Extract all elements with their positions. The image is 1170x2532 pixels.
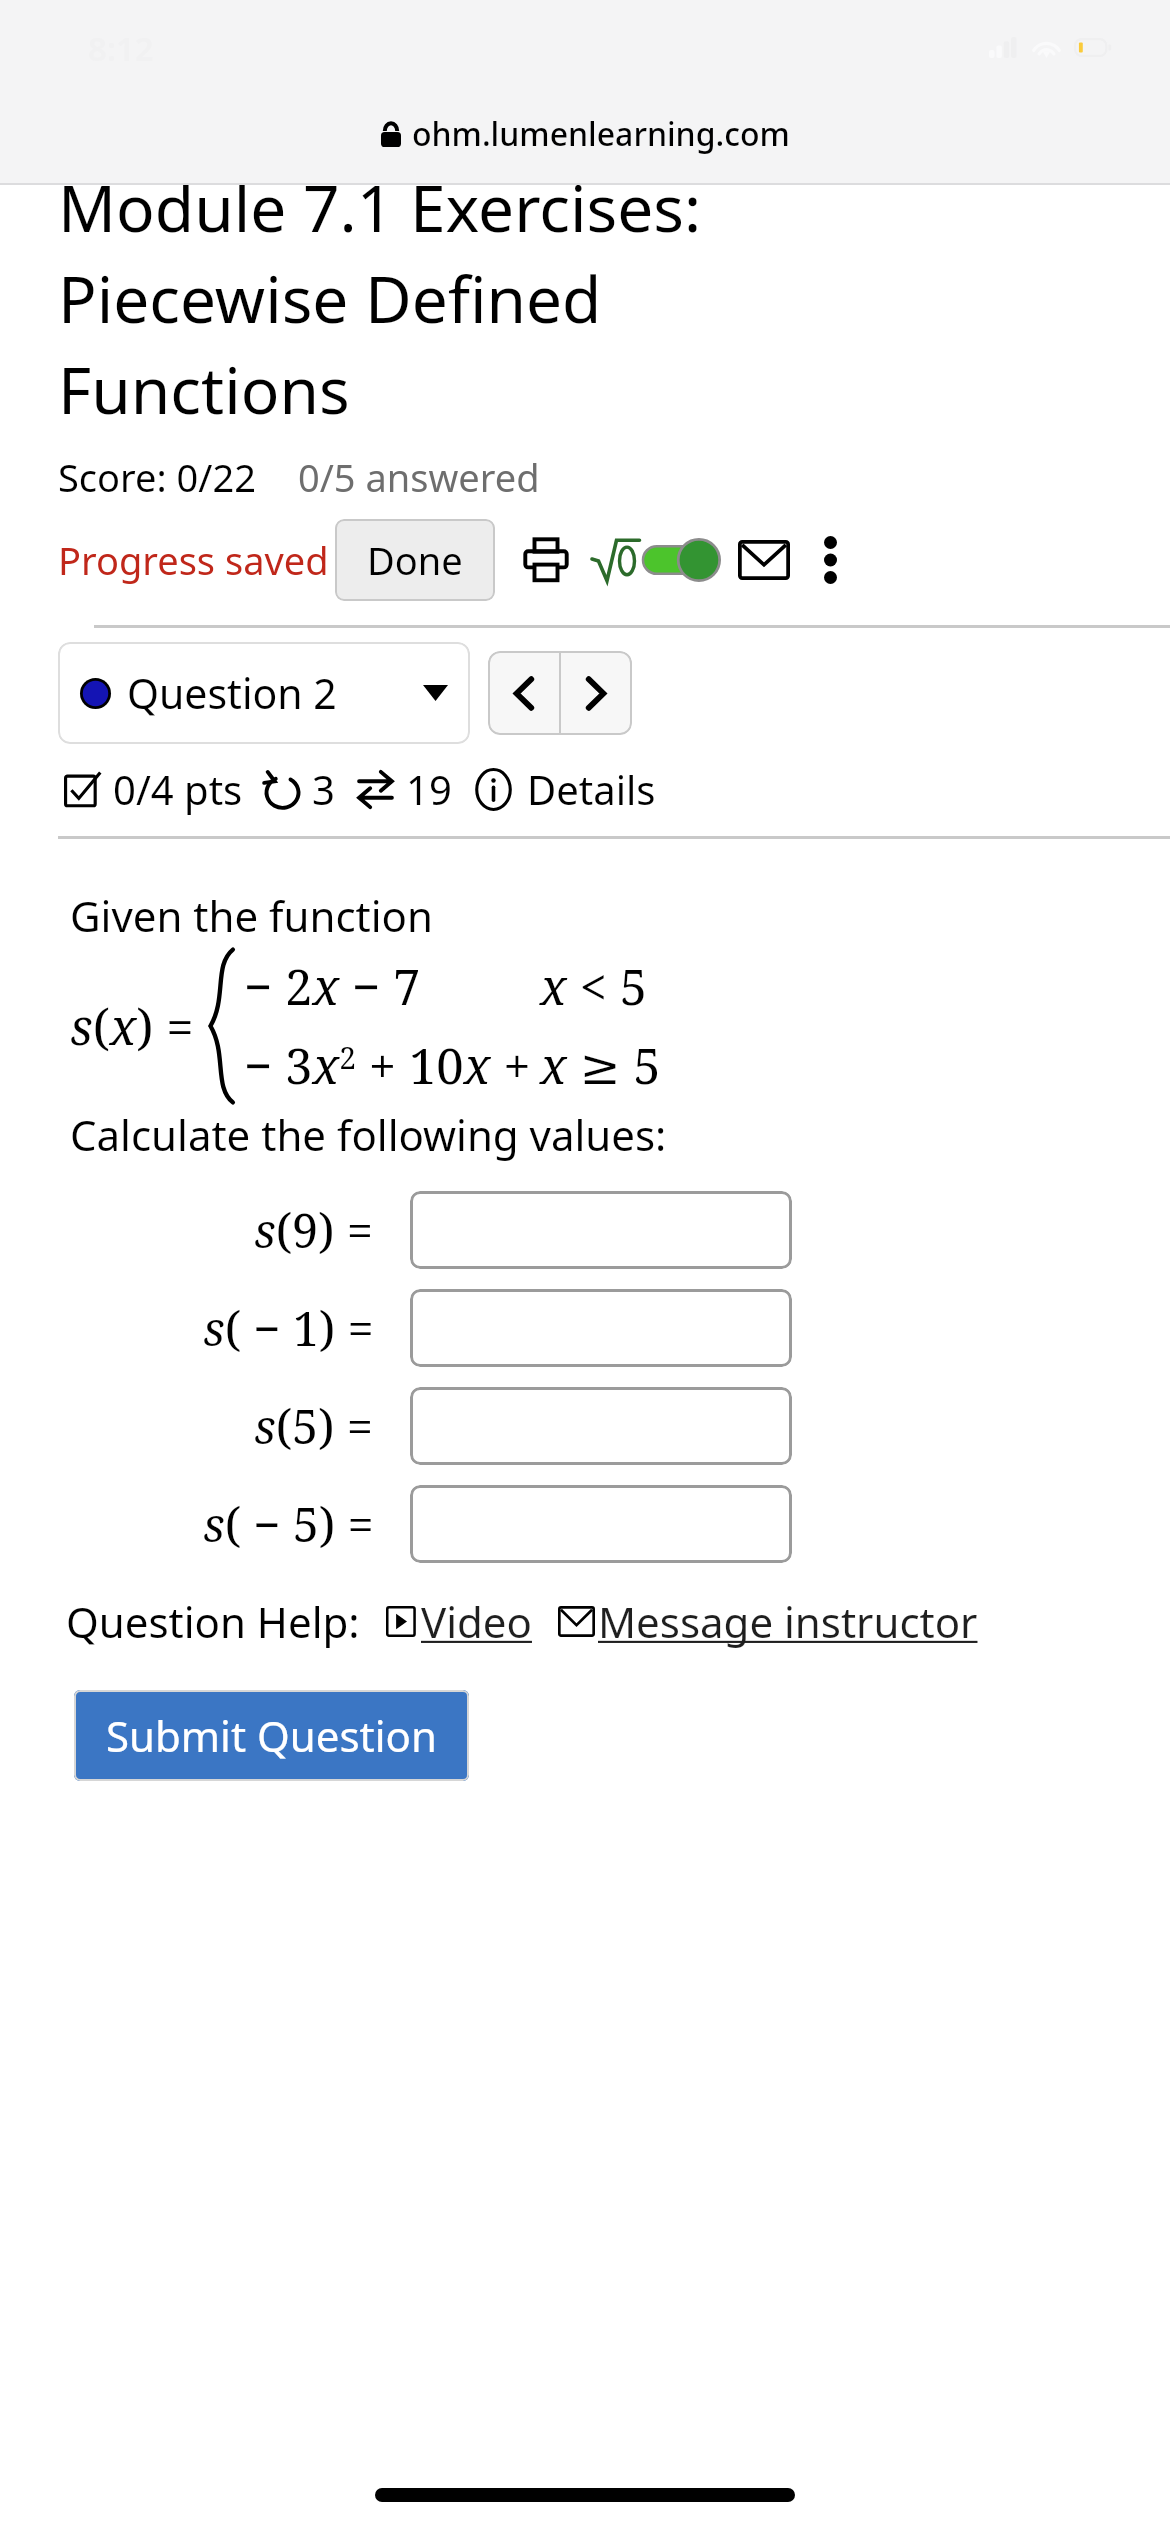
staticText: Message instructor bbox=[598, 1593, 978, 1650]
staticText: x ≥ 5 bbox=[540, 1032, 661, 1099]
staticText: − 2x − 7 bbox=[244, 953, 421, 1020]
staticText: Video bbox=[421, 1593, 532, 1650]
button[interactable]: Toggle math input bbox=[591, 537, 721, 583]
staticText: Question Help: bbox=[66, 1593, 360, 1650]
button[interactable]: Message instructor bbox=[558, 1593, 978, 1650]
staticText: 3 bbox=[312, 762, 335, 816]
staticText: Piecewise Defined bbox=[58, 255, 602, 342]
staticText: s( − 5) = bbox=[203, 1492, 386, 1556]
staticText: Module 7.1 Exercises: bbox=[58, 185, 702, 234]
staticText: Progress saved bbox=[58, 534, 329, 586]
staticText: Score: 0/22 bbox=[58, 451, 256, 503]
staticText: ohm.lumenlearning.com bbox=[412, 112, 790, 156]
button[interactable]: Answer field bbox=[410, 1387, 792, 1465]
staticText: Question 2 bbox=[127, 665, 337, 721]
button[interactable]: Mail bbox=[737, 533, 791, 587]
staticText: s(5) = bbox=[254, 1394, 386, 1458]
staticText: s(x) = bbox=[70, 993, 194, 1060]
button[interactable]: Details bbox=[472, 762, 656, 816]
button[interactable]: More options bbox=[803, 533, 857, 587]
staticText: 0/5 answered bbox=[298, 451, 540, 503]
staticText: Submit Question bbox=[106, 1707, 437, 1764]
staticText: x < 5 bbox=[540, 953, 648, 1020]
button[interactable]: Print bbox=[519, 533, 573, 587]
staticText: 0/4 pts bbox=[113, 762, 243, 816]
button[interactable]: Answer field bbox=[410, 1191, 792, 1269]
staticText: Functions bbox=[58, 346, 350, 433]
staticText: − 3x2 + 10x + 7 bbox=[244, 1032, 540, 1099]
staticText: Details bbox=[527, 762, 656, 816]
staticText: s(9) = bbox=[254, 1198, 386, 1262]
button[interactable]: Question 2 bbox=[58, 642, 470, 744]
button[interactable]: Previous question bbox=[488, 651, 559, 735]
button[interactable]: Answer field bbox=[410, 1485, 792, 1563]
staticText: 19 bbox=[406, 762, 452, 816]
button[interactable]: Video bbox=[386, 1593, 532, 1650]
button[interactable]: Submit Question bbox=[74, 1690, 469, 1781]
staticText: Done bbox=[367, 534, 463, 586]
staticText: Given the function bbox=[70, 887, 433, 944]
button[interactable]: Next question bbox=[561, 651, 632, 735]
staticText: s( − 1) = bbox=[203, 1296, 386, 1360]
button[interactable]: Answer field bbox=[410, 1289, 792, 1367]
button[interactable]: Done bbox=[335, 519, 495, 601]
staticText: Calculate the following values: bbox=[70, 1106, 667, 1163]
